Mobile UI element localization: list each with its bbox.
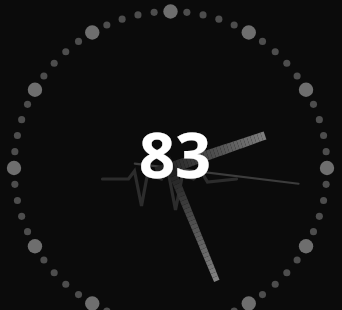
staticText: 83 xyxy=(139,111,212,197)
button[interactable]: Heart rate analog watch face, 83 bpm xyxy=(0,0,342,310)
